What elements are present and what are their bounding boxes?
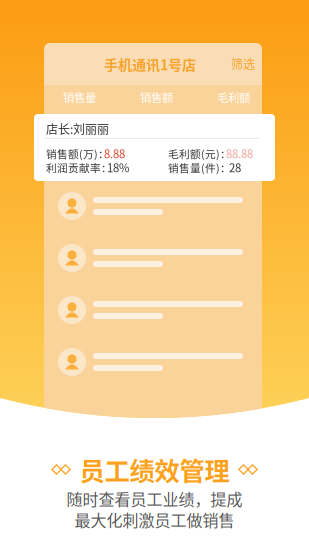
- staticText: 销售量: [63, 89, 96, 105]
- staticText: 店长:刘丽丽: [46, 120, 109, 137]
- staticText: 销售额(万)：: [46, 146, 109, 161]
- staticText: 销售量(件)：: [168, 160, 231, 175]
- staticText: 随时查看员工业绩，提成: [66, 487, 242, 510]
- staticText: 18%: [107, 159, 129, 175]
- staticText: 28: [229, 159, 241, 175]
- staticText: 手机通讯1号店: [104, 54, 196, 74]
- staticText: 8.88: [104, 145, 125, 161]
- staticText: 毛利额: [217, 89, 250, 105]
- staticText: 88.88: [226, 145, 253, 161]
- staticText: 员工绩效管理: [79, 451, 229, 488]
- staticText: 利润贡献率：: [46, 160, 112, 175]
- staticText: 销售额: [140, 89, 173, 105]
- staticText: 筛选: [231, 55, 255, 72]
- staticText: 最大化刺激员工做销售: [74, 508, 234, 531]
- staticText: 毛利额(元)：: [168, 146, 231, 161]
